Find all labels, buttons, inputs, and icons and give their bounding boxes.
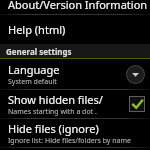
button[interactable]: About/Version Information <box>0 0 150 14</box>
staticText: Help (html) <box>8 22 66 37</box>
button[interactable]: Hide files (ignore) <box>0 119 150 147</box>
button[interactable]: Choose language <box>126 65 145 84</box>
button[interactable]: Show hidden files/folders <box>0 90 150 118</box>
staticText: Names starting with a dot . <box>8 107 97 117</box>
button[interactable]: Show hidden files/folders <box>129 96 145 112</box>
button[interactable]: Language <box>0 59 150 89</box>
staticText: General settings <box>6 46 72 57</box>
staticText: About/Version Information <box>8 0 148 11</box>
staticText: Hide files (ignore) <box>8 121 99 136</box>
staticText: Language <box>8 62 60 77</box>
staticText: System default <box>8 77 57 87</box>
button[interactable]: Help (html) <box>0 15 150 44</box>
staticText: Show hidden files/folders <box>8 92 126 107</box>
staticText: Ignore list: Hide files/folders by name <box>8 136 132 146</box>
